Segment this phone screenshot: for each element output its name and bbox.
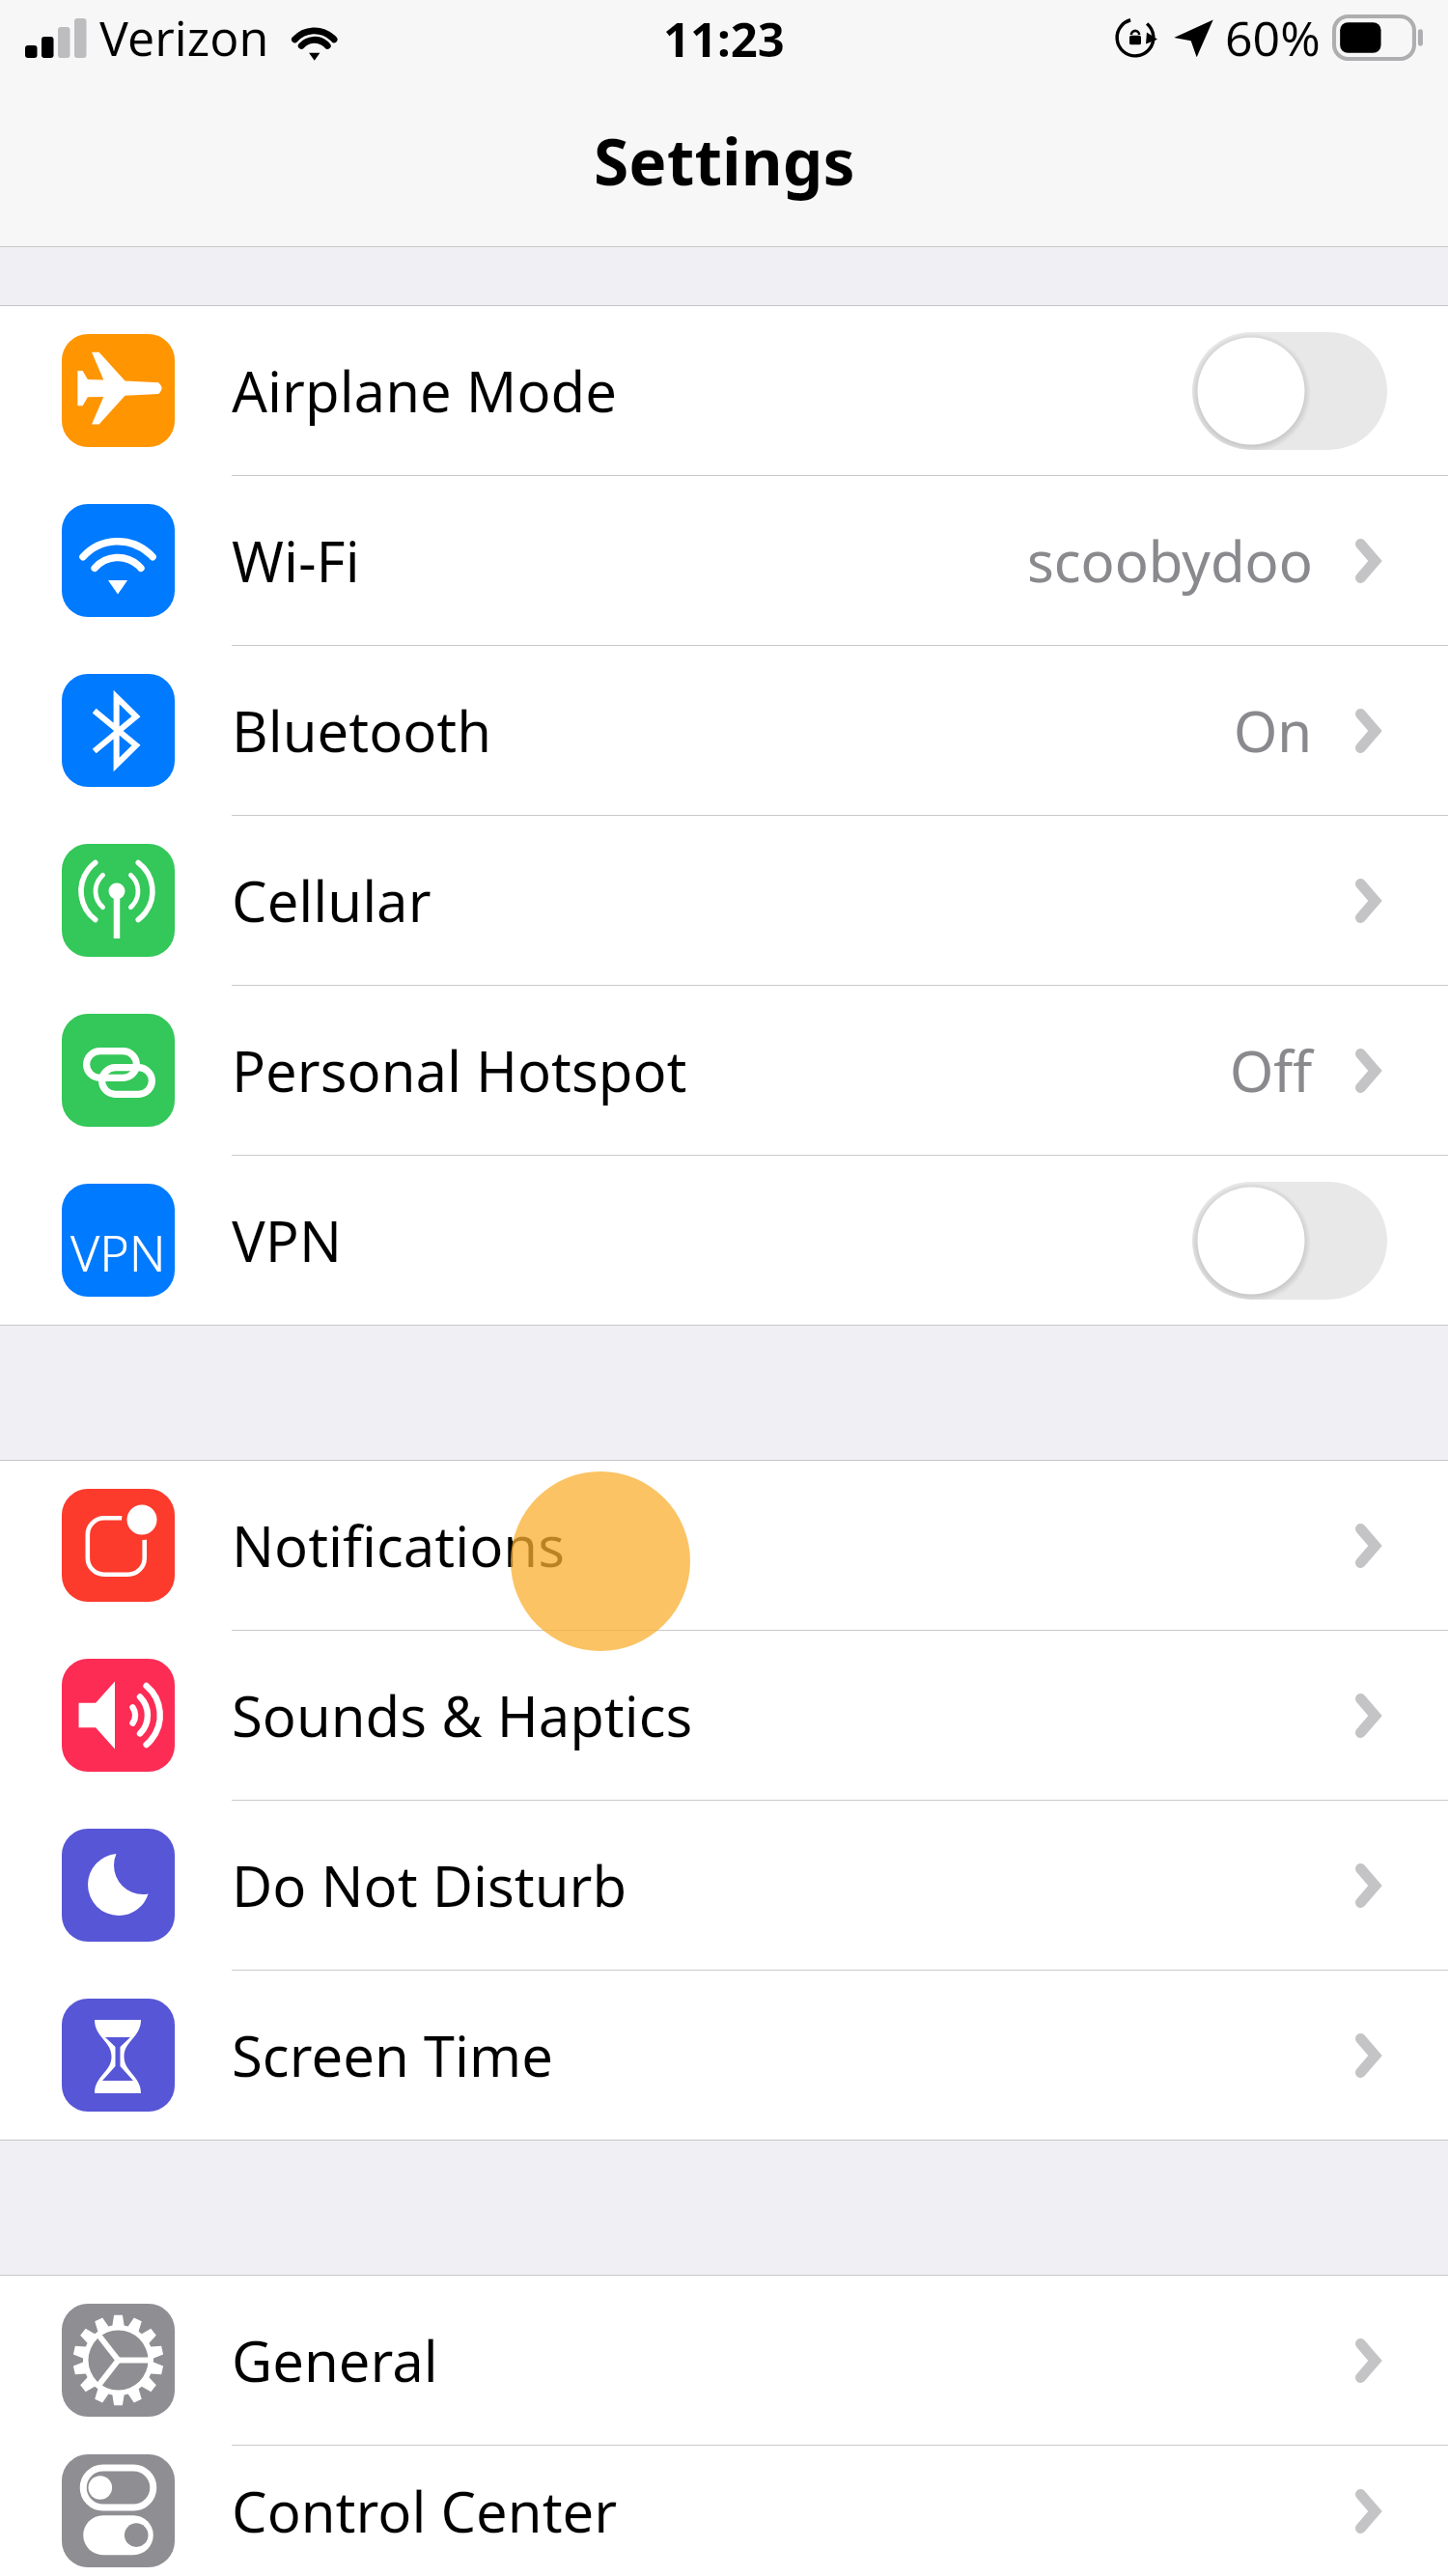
staticText: VPN <box>232 1202 342 1278</box>
button[interactable]: Personal Hotspot <box>0 986 1448 1155</box>
staticText: Settings <box>594 117 855 204</box>
button[interactable]: Screen Time <box>0 1971 1448 2140</box>
staticText: Bluetooth <box>232 692 492 769</box>
staticText: Wi-Fi <box>232 522 360 599</box>
staticText: 11:23 <box>663 7 785 71</box>
staticText: Sounds & Haptics <box>232 1677 693 1753</box>
button[interactable]: VPN <box>0 1156 1448 1325</box>
button[interactable]: Control Center <box>0 2446 1448 2576</box>
staticText: Control Center <box>232 2473 618 2549</box>
button[interactable]: Wi-Fi <box>0 476 1448 645</box>
button[interactable]: Bluetooth <box>0 646 1448 815</box>
staticText: VPN <box>70 1218 166 1286</box>
staticText: scoobydoo <box>1027 522 1313 599</box>
button[interactable]: Sounds & Haptics <box>0 1631 1448 1800</box>
staticText: Personal Hotspot <box>232 1032 687 1108</box>
button[interactable]: Airplane Mode <box>0 306 1448 475</box>
button[interactable]: Cellular <box>0 816 1448 985</box>
staticText: On <box>1234 692 1313 769</box>
staticText: Airplane Mode <box>232 352 617 429</box>
button[interactable]: Notifications <box>0 1461 1448 1630</box>
button[interactable]: Do Not Disturb <box>0 1801 1448 1970</box>
staticText: Off <box>1230 1032 1313 1108</box>
staticText: Verizon <box>99 5 269 70</box>
staticText: Notifications <box>232 1507 565 1583</box>
staticText: Cellular <box>232 862 432 938</box>
button[interactable]: VPN toggle <box>1192 1182 1387 1300</box>
staticText: General <box>232 2322 438 2398</box>
staticText: 60% <box>1225 5 1321 70</box>
staticText: Screen Time <box>232 2017 553 2093</box>
button[interactable]: Airplane Mode toggle <box>1192 332 1387 450</box>
button[interactable]: General <box>0 2276 1448 2445</box>
staticText: Do Not Disturb <box>232 1847 627 1923</box>
